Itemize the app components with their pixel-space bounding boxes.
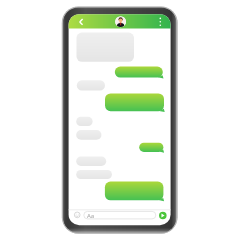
button[interactable] [77, 80, 105, 90]
button[interactable] [105, 93, 164, 111]
button[interactable]: Insert emoji [72, 210, 83, 220]
button[interactable]: Contact profile [113, 15, 129, 30]
button[interactable]: Message input [84, 211, 156, 219]
button[interactable] [139, 143, 163, 152]
button[interactable] [76, 170, 112, 179]
button[interactable] [105, 182, 164, 201]
button[interactable] [76, 130, 101, 140]
button[interactable] [77, 33, 135, 62]
button[interactable] [76, 117, 92, 126]
button[interactable]: More options [154, 15, 167, 29]
button[interactable]: Back [74, 15, 88, 29]
button[interactable] [76, 157, 106, 167]
button[interactable] [115, 67, 163, 78]
button[interactable]: Send [159, 212, 167, 220]
staticText: Aa [87, 212, 95, 220]
